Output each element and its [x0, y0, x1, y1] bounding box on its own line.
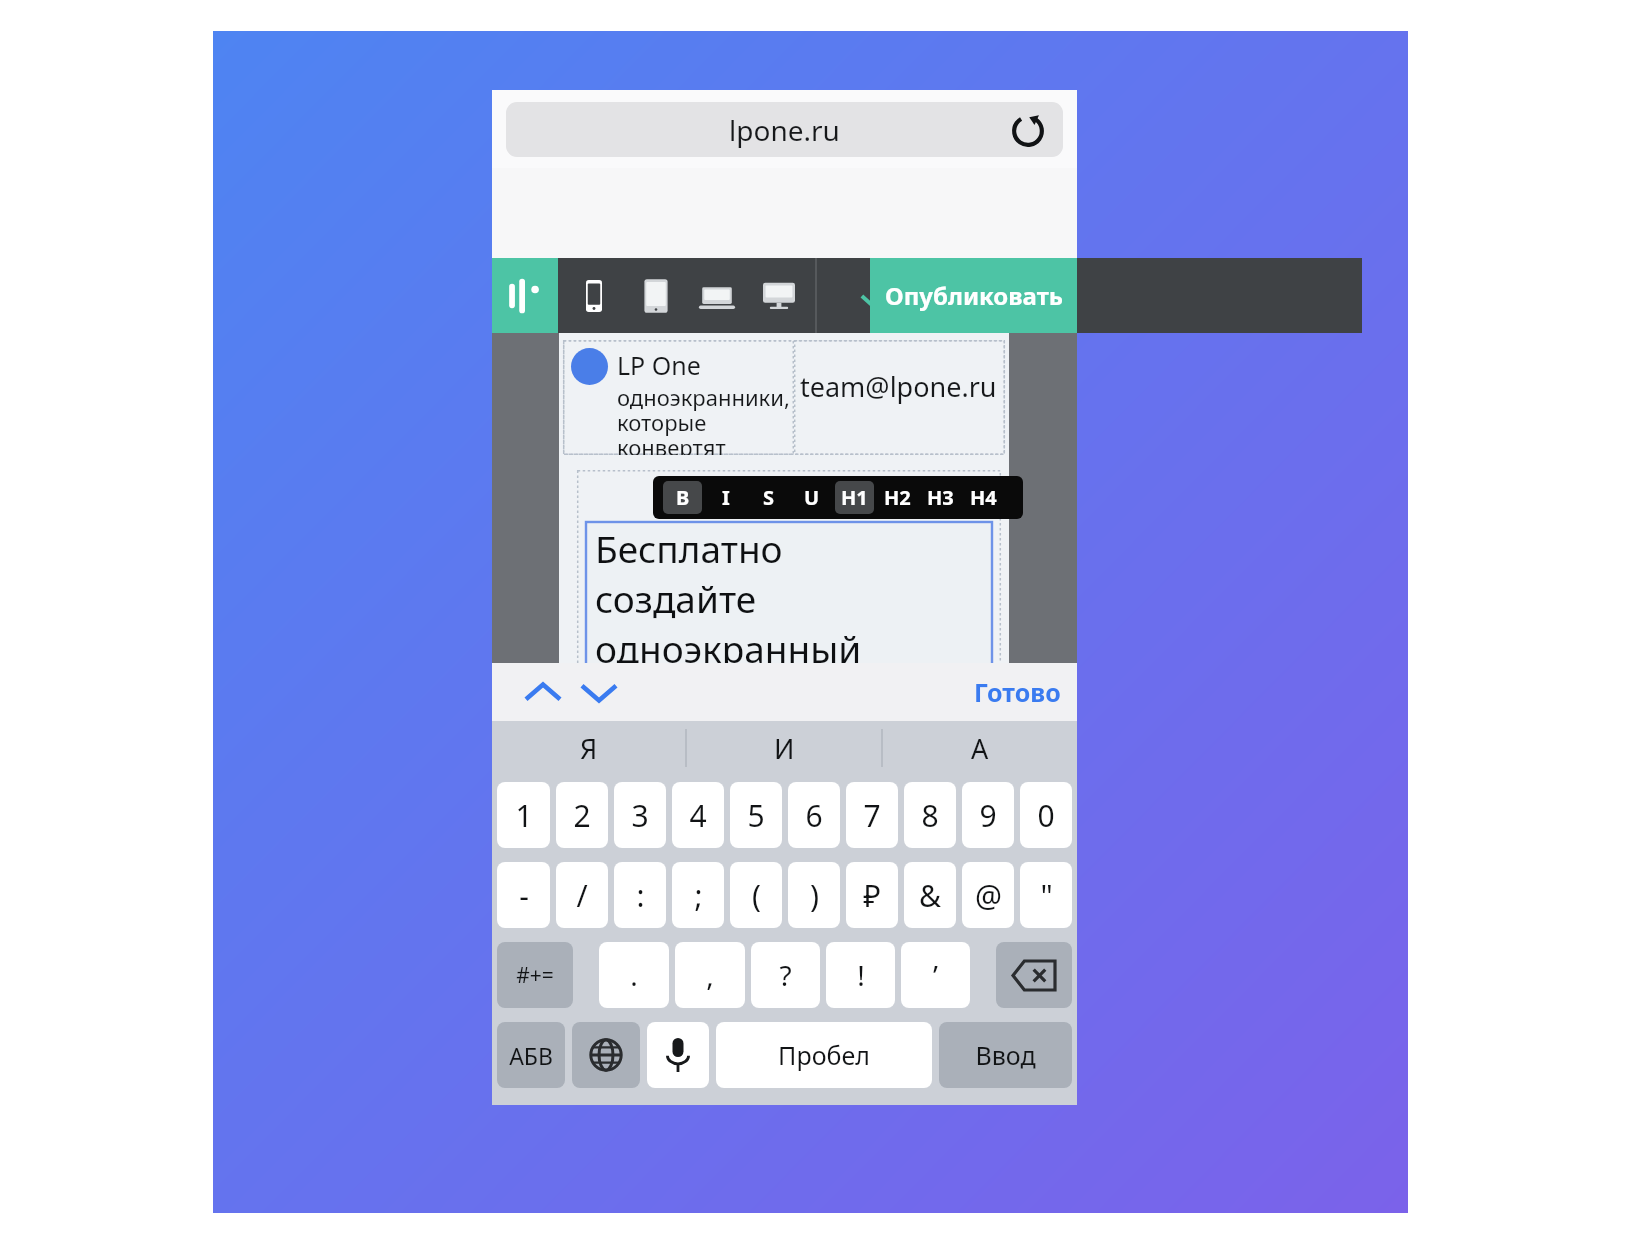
- staticText: сайт!: [595, 673, 684, 701]
- staticText: I: [722, 484, 730, 511]
- staticText: lpone.ru: [729, 111, 840, 149]
- staticText: АБВ: [509, 1040, 553, 1071]
- button[interactable]: Бесплатно: [586, 522, 992, 700]
- button[interactable]: H2: [878, 481, 917, 514]
- button[interactable]: Change keyboard language: [572, 1022, 640, 1088]
- button[interactable]: Готово: [964, 663, 1071, 721]
- button[interactable]: 9: [962, 782, 1014, 848]
- staticText: 3: [631, 795, 649, 836]
- button[interactable]: ;: [672, 862, 724, 928]
- button[interactable]: !: [826, 942, 895, 1008]
- button[interactable]: Previous field: [516, 663, 570, 721]
- button[interactable]: Ввод: [939, 1022, 1072, 1088]
- button[interactable]: LP One logo: [492, 258, 558, 333]
- button[interactable]: &: [904, 862, 956, 928]
- staticText: 9: [979, 795, 997, 836]
- button[interactable]: H3: [921, 481, 960, 514]
- button[interactable]: ): [788, 862, 840, 928]
- button[interactable]: (: [730, 862, 782, 928]
- button[interactable]: 5: [730, 782, 782, 848]
- button[interactable]: 4: [672, 782, 724, 848]
- button[interactable]: Saved: [817, 258, 937, 333]
- button[interactable]: #+=: [497, 942, 573, 1008]
- staticText: H1: [841, 484, 868, 511]
- button[interactable]: ": [1020, 862, 1072, 928]
- button[interactable]: /: [556, 862, 608, 928]
- button[interactable]: .: [599, 942, 669, 1008]
- staticText: Бесплатно: [595, 523, 783, 573]
- button[interactable]: А: [883, 721, 1077, 775]
- button[interactable]: Опубликовать: [870, 258, 1077, 333]
- staticText: /: [576, 875, 588, 916]
- button[interactable]: Phone preview: [568, 270, 620, 322]
- staticText: 0: [1037, 795, 1055, 836]
- button[interactable]: Tablet preview: [630, 270, 682, 322]
- staticText: одноэкранный: [595, 623, 862, 673]
- button[interactable]: @: [962, 862, 1014, 928]
- button[interactable]: B: [663, 481, 702, 514]
- staticText: @: [975, 875, 1002, 916]
- button[interactable]: Пробел: [716, 1022, 932, 1088]
- staticText: 1: [515, 795, 533, 836]
- button[interactable]: :: [614, 862, 666, 928]
- button[interactable]: 6: [788, 782, 840, 848]
- button[interactable]: ’: [901, 942, 970, 1008]
- staticText: А: [971, 730, 989, 767]
- staticText: ,: [706, 956, 714, 994]
- staticText: ;: [694, 875, 703, 916]
- button[interactable]: 7: [846, 782, 898, 848]
- staticText: team@lpone.ru: [800, 368, 997, 405]
- button[interactable]: 0: [1020, 782, 1072, 848]
- button[interactable]: team@lpone.ru: [794, 340, 1005, 455]
- staticText: U: [804, 484, 820, 511]
- staticText: ₽: [863, 875, 881, 916]
- staticText: ?: [779, 956, 792, 994]
- button[interactable]: LP One: [563, 340, 794, 455]
- button[interactable]: ₽: [846, 862, 898, 928]
- button[interactable]: АБВ: [497, 1022, 565, 1088]
- staticText: ): [810, 875, 819, 916]
- staticText: H4: [970, 484, 997, 511]
- staticText: #+=: [516, 961, 554, 990]
- button[interactable]: 8: [904, 782, 956, 848]
- staticText: LP One: [617, 348, 701, 382]
- staticText: Пробел: [778, 1038, 870, 1072]
- button[interactable]: И: [687, 721, 881, 775]
- staticText: одноэкранники, которые конвертят: [617, 382, 790, 455]
- button[interactable]: lpone.ru: [506, 102, 1063, 157]
- button[interactable]: Laptop preview: [691, 270, 743, 322]
- button[interactable]: U: [792, 481, 831, 514]
- staticText: 4: [689, 795, 707, 836]
- staticText: создайте: [595, 573, 757, 623]
- staticText: 6: [805, 795, 823, 836]
- button[interactable]: Next field: [572, 663, 626, 721]
- button[interactable]: 3: [614, 782, 666, 848]
- staticText: &: [919, 875, 941, 916]
- staticText: Опубликовать: [885, 279, 1063, 312]
- staticText: S: [763, 484, 775, 511]
- staticText: 5: [747, 795, 765, 836]
- button[interactable]: 2: [556, 782, 608, 848]
- button[interactable]: 1: [497, 782, 550, 848]
- staticText: И: [774, 730, 795, 767]
- staticText: (: [752, 875, 761, 916]
- button[interactable]: ,: [675, 942, 745, 1008]
- button[interactable]: ?: [751, 942, 820, 1008]
- button[interactable]: H1: [835, 481, 874, 514]
- button[interactable]: Dictate: [647, 1022, 709, 1088]
- button[interactable]: Я: [492, 721, 685, 775]
- staticText: H3: [927, 484, 954, 511]
- button[interactable]: Backspace: [996, 942, 1072, 1008]
- staticText: 7: [863, 795, 881, 836]
- button[interactable]: H4: [964, 481, 1003, 514]
- staticText: Я: [580, 730, 598, 767]
- button[interactable]: Reload: [1007, 109, 1049, 151]
- staticText: B: [676, 484, 690, 511]
- staticText: .: [630, 956, 638, 994]
- button[interactable]: -: [497, 862, 550, 928]
- staticText: Готово: [974, 675, 1061, 709]
- button[interactable]: Desktop preview: [753, 270, 805, 322]
- button[interactable]: S: [749, 481, 788, 514]
- button[interactable]: I: [706, 481, 745, 514]
- staticText: -: [519, 875, 529, 916]
